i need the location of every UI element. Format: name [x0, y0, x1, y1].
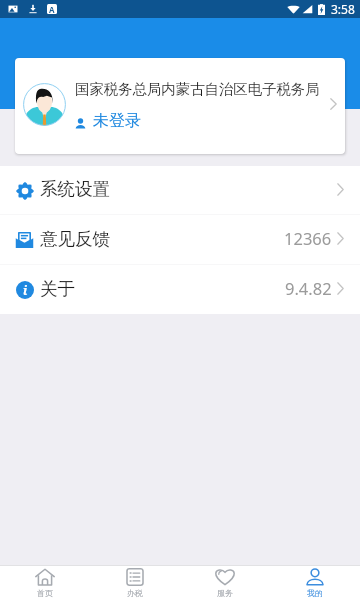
staticText: 服务 — [217, 588, 233, 598]
staticText: 意见反馈 — [40, 228, 110, 250]
staticText: 关于 — [40, 278, 75, 300]
button[interactable]: 未登录 — [75, 111, 141, 131]
button[interactable]: 服务 — [180, 566, 270, 600]
staticText: 12366 — [284, 227, 332, 249]
staticText: 办税 — [127, 588, 143, 598]
button[interactable]: 首页 — [0, 566, 90, 600]
button[interactable]: 办税 — [90, 566, 180, 600]
button[interactable]: 我的 — [270, 566, 360, 600]
staticText: 我的 — [307, 588, 323, 598]
staticText: 国家税务总局内蒙古自治区电子税务局 — [75, 80, 320, 98]
staticText: i — [23, 282, 28, 298]
button[interactable]: 系统设置 — [0, 166, 360, 214]
staticText: 未登录 — [93, 111, 141, 131]
staticText: 首页 — [37, 588, 53, 598]
staticText: 系统设置 — [40, 178, 110, 200]
button[interactable]: 国家税务总局内蒙古自治区电子税务局 — [15, 58, 345, 154]
staticText: 3:58 — [331, 1, 355, 17]
staticText: A — [49, 4, 55, 14]
staticText: 9.4.82 — [285, 277, 332, 299]
button[interactable]: 意见反馈 — [0, 215, 360, 264]
button[interactable]: i — [0, 265, 360, 314]
